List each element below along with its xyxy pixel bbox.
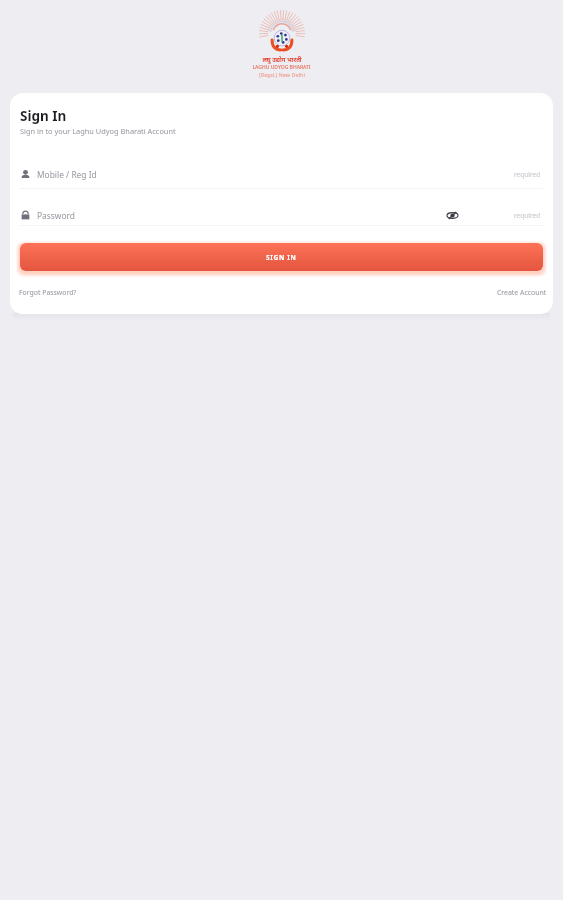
staticText: required xyxy=(514,170,541,179)
button[interactable]: Create Account xyxy=(495,286,549,299)
staticText: Sign in to your Laghu Udyog Bharati Acco… xyxy=(20,126,176,136)
staticText: लघु उद्योग भारती xyxy=(262,56,302,64)
staticText: Sign In xyxy=(20,107,67,125)
staticText: Create Account xyxy=(497,288,547,297)
button[interactable]: Mobile / Reg Id xyxy=(20,169,541,180)
button[interactable]: Show password xyxy=(444,207,460,223)
button[interactable]: Password xyxy=(20,207,541,223)
staticText: required xyxy=(514,211,541,220)
staticText: SIGN IN xyxy=(266,253,297,262)
button[interactable]: Forgot Password? xyxy=(17,286,79,299)
staticText: Mobile / Reg Id xyxy=(37,169,97,180)
button[interactable]: SIGN IN xyxy=(20,243,543,271)
staticText: (Regd.) New Delhi xyxy=(259,71,305,78)
staticText: Password xyxy=(37,210,75,221)
staticText: Forgot Password? xyxy=(19,288,77,297)
staticText: LAGHU UDYOG BHARATI xyxy=(252,64,311,71)
